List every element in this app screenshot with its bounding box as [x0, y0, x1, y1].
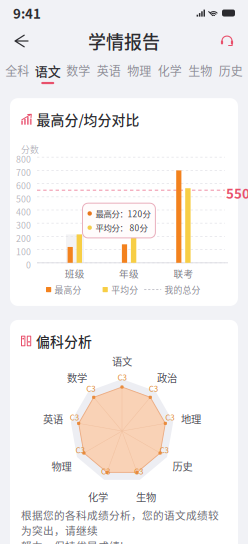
- staticText: 地理: [181, 411, 201, 426]
- button[interactable]: 物理: [124, 57, 154, 86]
- button[interactable]: 数学: [63, 57, 93, 86]
- staticText: C3: [134, 465, 143, 477]
- staticText: C3: [149, 383, 158, 394]
- button[interactable]: 英语: [93, 57, 124, 86]
- staticText: 根据您的各科成绩分析，您的语文成绩较为突出，请继续 努力，保持优异成绩!: [21, 507, 219, 544]
- button[interactable]: 全科: [2, 57, 32, 86]
- staticText: 500: [16, 192, 31, 205]
- button[interactable]: 化学: [154, 57, 185, 86]
- staticText: 历史: [173, 459, 193, 473]
- button[interactable]: 生物: [185, 57, 215, 86]
- staticText: 化学: [88, 489, 108, 504]
- staticText: 生物: [188, 62, 212, 79]
- staticText: 数学: [66, 62, 90, 79]
- staticText: 400: [16, 205, 31, 218]
- staticText: 历史: [219, 62, 243, 79]
- staticText: 0: [26, 258, 31, 271]
- staticText: 600: [16, 179, 31, 192]
- staticText: 100: [16, 245, 31, 258]
- staticText: 550: [226, 183, 248, 202]
- staticText: C3: [165, 411, 174, 423]
- button[interactable]: 历史: [215, 57, 246, 86]
- button[interactable]: 返回: [5, 27, 37, 55]
- staticText: 700: [16, 166, 31, 178]
- staticText: 最高分: [55, 283, 82, 296]
- staticText: C3: [70, 411, 79, 423]
- button[interactable]: 语文: [32, 56, 63, 87]
- staticText: 语文: [112, 354, 132, 368]
- staticText: 平均分: [111, 283, 138, 296]
- staticText: 最高分/均分对比: [36, 109, 139, 129]
- staticText: C3: [75, 444, 84, 456]
- staticText: 英语: [97, 62, 121, 79]
- staticText: C3: [117, 371, 126, 383]
- staticText: 生物: [136, 489, 156, 504]
- staticText: 200: [16, 232, 31, 244]
- staticText: 全科: [5, 62, 29, 79]
- staticText: 800: [16, 153, 31, 165]
- staticText: 学情报告: [88, 28, 160, 54]
- staticText: 年级: [119, 266, 139, 280]
- staticText: 物理: [127, 62, 151, 79]
- staticText: 9:41: [13, 3, 41, 23]
- staticText: 物理: [51, 459, 71, 473]
- staticText: 语文: [35, 61, 61, 80]
- staticText: 最高分：120分: [95, 207, 150, 220]
- staticText: C3: [159, 444, 168, 456]
- staticText: 化学: [158, 62, 182, 79]
- staticText: 政治: [157, 370, 177, 385]
- button[interactable]: 客服: [211, 27, 243, 55]
- staticText: 300: [16, 219, 31, 231]
- staticText: 联考: [173, 266, 193, 280]
- staticText: 数学: [67, 370, 87, 385]
- staticText: C3: [101, 465, 110, 477]
- staticText: 英语: [43, 411, 63, 426]
- staticText: C3: [86, 383, 95, 394]
- staticText: 分数: [21, 143, 39, 155]
- staticText: 班级: [65, 266, 85, 280]
- staticText: 偏科分析: [36, 331, 92, 351]
- staticText: 平均分： 80分: [95, 222, 147, 234]
- staticText: 我的总分: [165, 283, 201, 296]
